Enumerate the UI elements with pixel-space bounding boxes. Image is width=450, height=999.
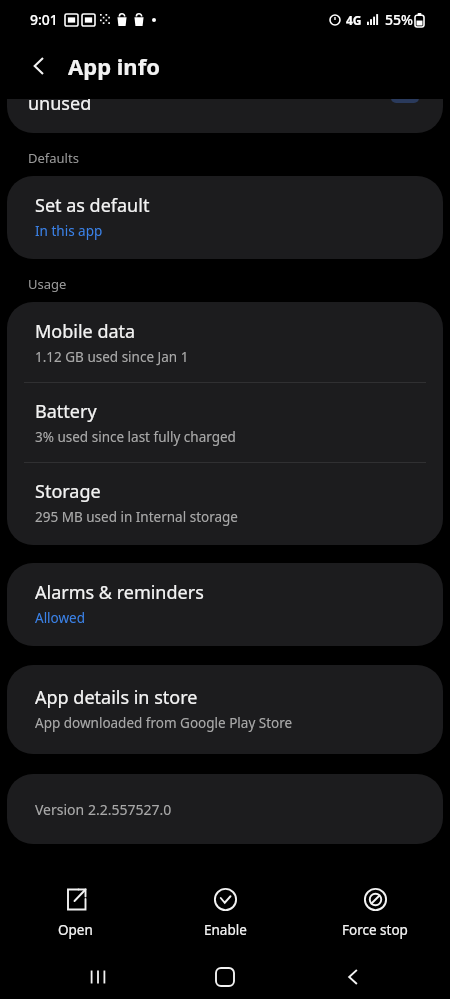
- staticText: 55%: [385, 10, 413, 29]
- button[interactable]: Force stop: [300, 881, 450, 945]
- staticText: App info: [68, 51, 160, 81]
- button[interactable]: Enable: [150, 881, 300, 945]
- staticText: Battery: [35, 399, 97, 424]
- staticText: Enable: [204, 921, 247, 939]
- staticText: Mobile data: [35, 319, 136, 344]
- button[interactable]: unused: [7, 99, 443, 133]
- button[interactable]: Home: [195, 957, 255, 997]
- staticText: Allowed: [35, 609, 86, 627]
- button[interactable]: Back: [323, 957, 383, 997]
- staticText: App downloaded from Google Play Store: [35, 714, 293, 732]
- button[interactable]: Back: [22, 49, 56, 83]
- staticText: Set as default: [35, 193, 150, 218]
- staticText: Defaults: [28, 149, 79, 167]
- button[interactable]: Recent apps: [68, 957, 128, 997]
- staticText: Usage: [28, 275, 67, 293]
- staticText: App details in store: [35, 685, 198, 710]
- button[interactable]: Mobile data: [7, 302, 443, 382]
- staticText: Version 2.2.557527.0: [35, 800, 172, 819]
- button[interactable]: App details in store: [7, 665, 443, 754]
- staticText: 295 MB used in Internal storage: [35, 508, 238, 526]
- staticText: Open: [58, 921, 93, 939]
- staticText: 4G: [346, 12, 362, 28]
- button[interactable]: Set as default: [7, 176, 443, 259]
- button[interactable]: Battery: [7, 383, 443, 462]
- staticText: Alarms & reminders: [35, 580, 204, 605]
- staticText: Storage: [35, 479, 101, 504]
- staticText: 1.12 GB used since Jan 1: [35, 348, 189, 366]
- staticText: 9:01: [30, 10, 58, 29]
- button[interactable]: Alarms & reminders: [7, 563, 443, 646]
- staticText: Force stop: [342, 921, 408, 939]
- staticText: 3% used since last fully charged: [35, 428, 236, 446]
- staticText: unused: [28, 99, 92, 116]
- button[interactable]: Storage: [7, 463, 443, 545]
- button[interactable]: Open: [0, 881, 150, 945]
- staticText: In this app: [35, 222, 103, 240]
